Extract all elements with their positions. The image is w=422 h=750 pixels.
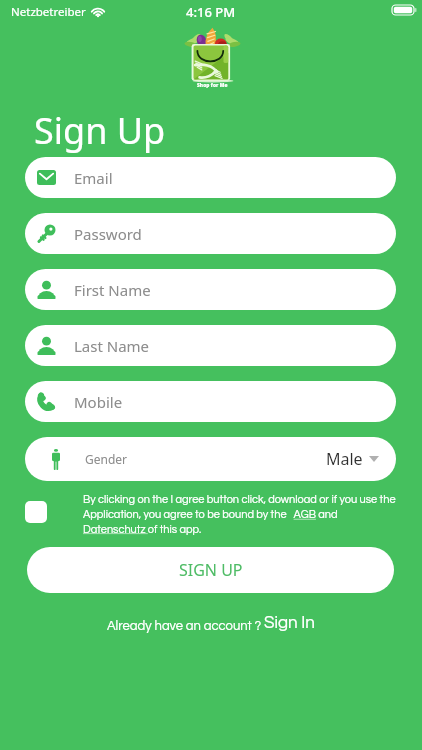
staticText: First Name <box>74 280 151 300</box>
staticText: Password <box>74 224 142 244</box>
button[interactable]: First Name <box>25 269 396 310</box>
staticText: Netzbetreiber <box>11 4 86 20</box>
staticText: Gender <box>85 451 128 467</box>
button[interactable]: Gender <box>25 437 396 481</box>
button[interactable]: SIGN UP <box>27 547 394 593</box>
staticText: Sign In <box>264 614 315 632</box>
staticText: Email <box>74 168 113 188</box>
button[interactable]: Password <box>25 213 396 254</box>
button[interactable]: Last Name <box>25 325 396 366</box>
staticText: Sign Up <box>34 106 166 155</box>
staticText: Shop for Me <box>197 82 228 89</box>
button[interactable]: Email <box>25 157 396 198</box>
staticText: Last Name <box>74 336 150 356</box>
staticText: By clicking on the I agree button click,… <box>83 494 396 535</box>
button[interactable]: I agree checkbox <box>25 501 47 523</box>
button[interactable]: Mobile <box>25 381 396 422</box>
staticText: SIGN UP <box>179 559 243 581</box>
button[interactable]: Sign In <box>264 614 315 632</box>
staticText: Mobile <box>74 392 123 412</box>
staticText: Male <box>326 448 363 470</box>
staticText: Already have an account ? <box>107 619 264 632</box>
staticText: 4:16 PM <box>186 3 236 21</box>
